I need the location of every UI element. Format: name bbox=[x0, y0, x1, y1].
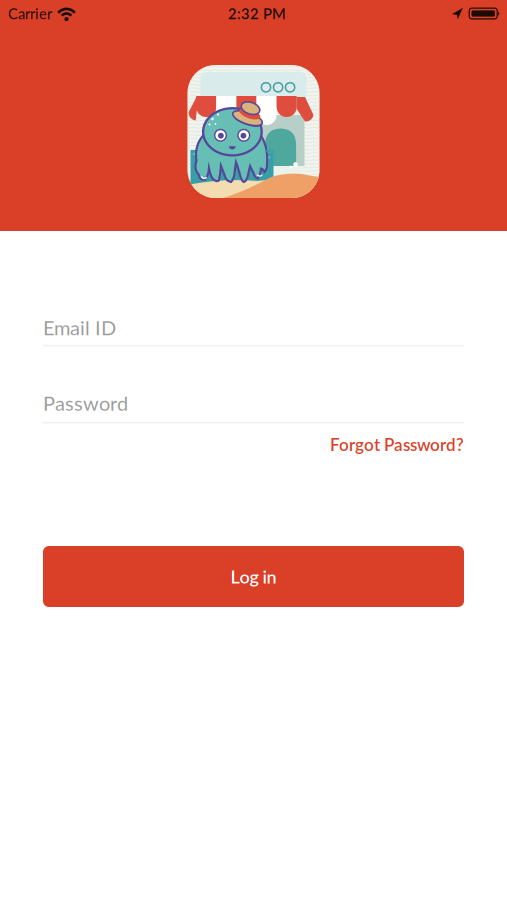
staticText: 2:32 PM bbox=[228, 5, 286, 22]
staticText: Carrier bbox=[8, 5, 52, 22]
button[interactable]: Email ID bbox=[43, 315, 464, 346]
staticText: Log in bbox=[230, 566, 276, 587]
button[interactable]: Password bbox=[43, 391, 464, 423]
staticText: Forgot Password? bbox=[330, 434, 464, 454]
button[interactable]: Log in bbox=[43, 546, 464, 607]
staticText: Email ID bbox=[43, 315, 116, 339]
staticText: Password bbox=[43, 391, 128, 415]
button[interactable]: Forgot Password? bbox=[330, 434, 464, 454]
